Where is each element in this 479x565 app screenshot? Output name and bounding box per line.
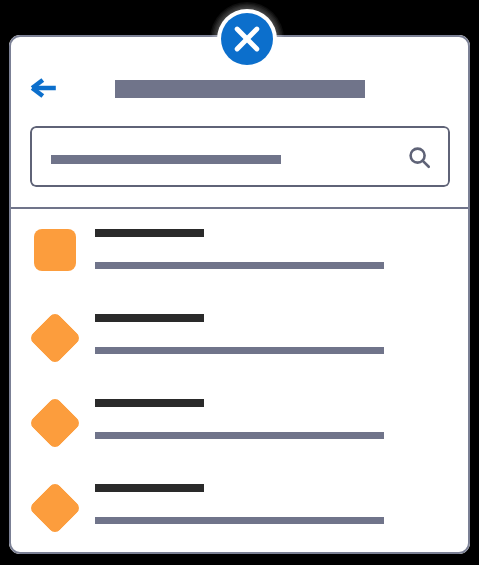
button[interactable]: [9, 299, 470, 384]
other: Search: [405, 143, 435, 173]
button[interactable]: [9, 469, 470, 554]
button[interactable]: Close: [211, 3, 283, 75]
button[interactable]: Search: [30, 126, 450, 187]
button[interactable]: Back: [24, 68, 64, 108]
button[interactable]: [9, 384, 470, 469]
button[interactable]: [9, 214, 470, 299]
